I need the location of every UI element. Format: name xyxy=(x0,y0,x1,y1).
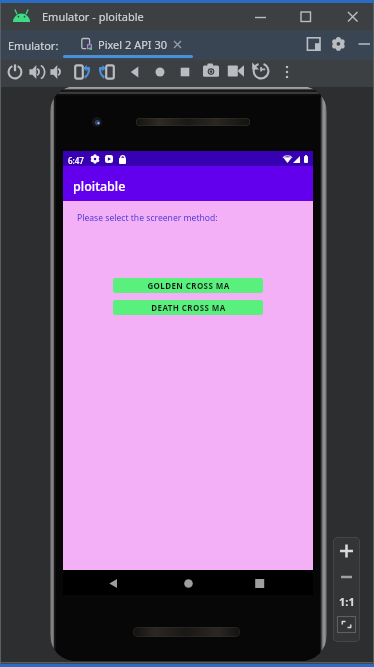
button[interactable]: Zoom out xyxy=(333,565,360,589)
button[interactable]: Back xyxy=(104,574,123,590)
button[interactable]: Overview xyxy=(174,61,196,85)
button[interactable]: Restore xyxy=(250,61,272,85)
staticText: DEATH CROSS MA xyxy=(151,302,226,313)
button[interactable]: GOLDEN CROSS MA xyxy=(113,278,263,293)
button[interactable]: More xyxy=(276,61,298,85)
staticText: 6:47 xyxy=(68,155,84,166)
button[interactable]: Pixel 2 API 30 xyxy=(64,30,193,58)
staticText: Please select the screener method: xyxy=(77,212,218,224)
button[interactable]: Minimize xyxy=(242,0,280,30)
button[interactable]: Rotate left xyxy=(71,61,93,85)
staticText: Emulator - ploitable xyxy=(42,9,144,24)
button[interactable]: Fit to screen xyxy=(333,614,360,640)
button[interactable]: Back xyxy=(124,61,146,85)
button[interactable]: Toggle panel xyxy=(301,31,325,57)
button[interactable]: Home xyxy=(179,574,198,590)
staticText: Emulator: xyxy=(8,38,59,53)
button[interactable]: Settings xyxy=(327,31,350,57)
button[interactable]: Recents xyxy=(250,574,269,590)
button[interactable]: Screenshot xyxy=(200,61,222,85)
button[interactable]: Rotate right xyxy=(96,61,118,85)
button[interactable]: Record xyxy=(225,61,247,85)
staticText: Pixel 2 API 30 xyxy=(98,37,168,52)
staticText: GOLDEN CROSS MA xyxy=(147,280,230,291)
button[interactable]: Power xyxy=(4,61,26,85)
button[interactable]: Actual size xyxy=(333,589,360,613)
button[interactable]: Hide xyxy=(352,31,374,57)
button[interactable]: Close xyxy=(334,0,372,30)
button[interactable]: DEATH CROSS MA xyxy=(113,300,263,315)
button[interactable]: Volume down xyxy=(48,61,70,85)
button[interactable]: Zoom in xyxy=(333,539,360,563)
button[interactable]: Home xyxy=(149,61,171,85)
button[interactable]: Maximize xyxy=(287,0,325,30)
staticText: ploitable xyxy=(73,178,126,195)
button[interactable]: Volume up xyxy=(27,61,49,85)
staticText: 1:1 xyxy=(339,594,355,609)
